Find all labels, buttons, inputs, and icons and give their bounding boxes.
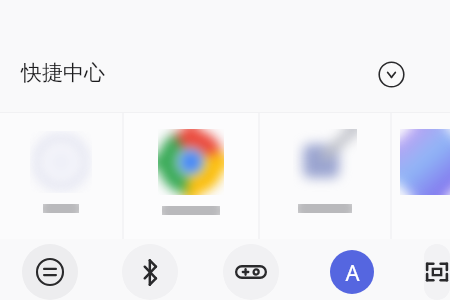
staticText: 快捷中心 bbox=[21, 60, 105, 86]
button[interactable] bbox=[0, 113, 122, 239]
button[interactable] bbox=[260, 113, 390, 239]
button[interactable]: Game mode bbox=[223, 244, 279, 300]
button[interactable] bbox=[124, 113, 258, 239]
button[interactable]: Auto brightness bbox=[324, 244, 380, 300]
button[interactable]: Screenshot bbox=[424, 244, 450, 300]
button[interactable]: Do not disturb bbox=[22, 244, 78, 300]
button[interactable]: Bluetooth bbox=[122, 244, 178, 300]
button[interactable] bbox=[392, 113, 450, 239]
staticText: A bbox=[345, 257, 360, 287]
button[interactable]: Collapse bbox=[375, 58, 408, 91]
